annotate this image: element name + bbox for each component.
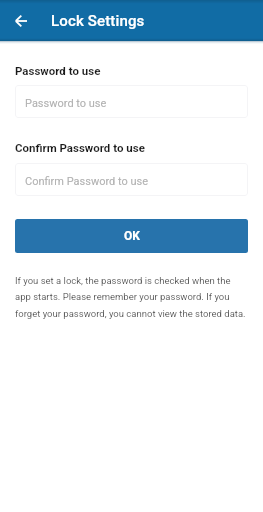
staticText: Confirm Password to use [25, 175, 149, 188]
staticText: Confirm Password to use [15, 141, 145, 154]
button[interactable]: Confirm Password to use [15, 163, 248, 196]
button[interactable]: OK [15, 219, 248, 253]
staticText: If you set a lock, the password is check… [15, 275, 248, 319]
button[interactable]: Password to use [15, 85, 248, 118]
staticText: Password to use [25, 97, 107, 110]
staticText: OK [124, 229, 140, 243]
button[interactable]: Navigate up [4, 4, 37, 37]
staticText: Lock Settings [51, 12, 145, 30]
staticText: Password to use [15, 64, 101, 77]
